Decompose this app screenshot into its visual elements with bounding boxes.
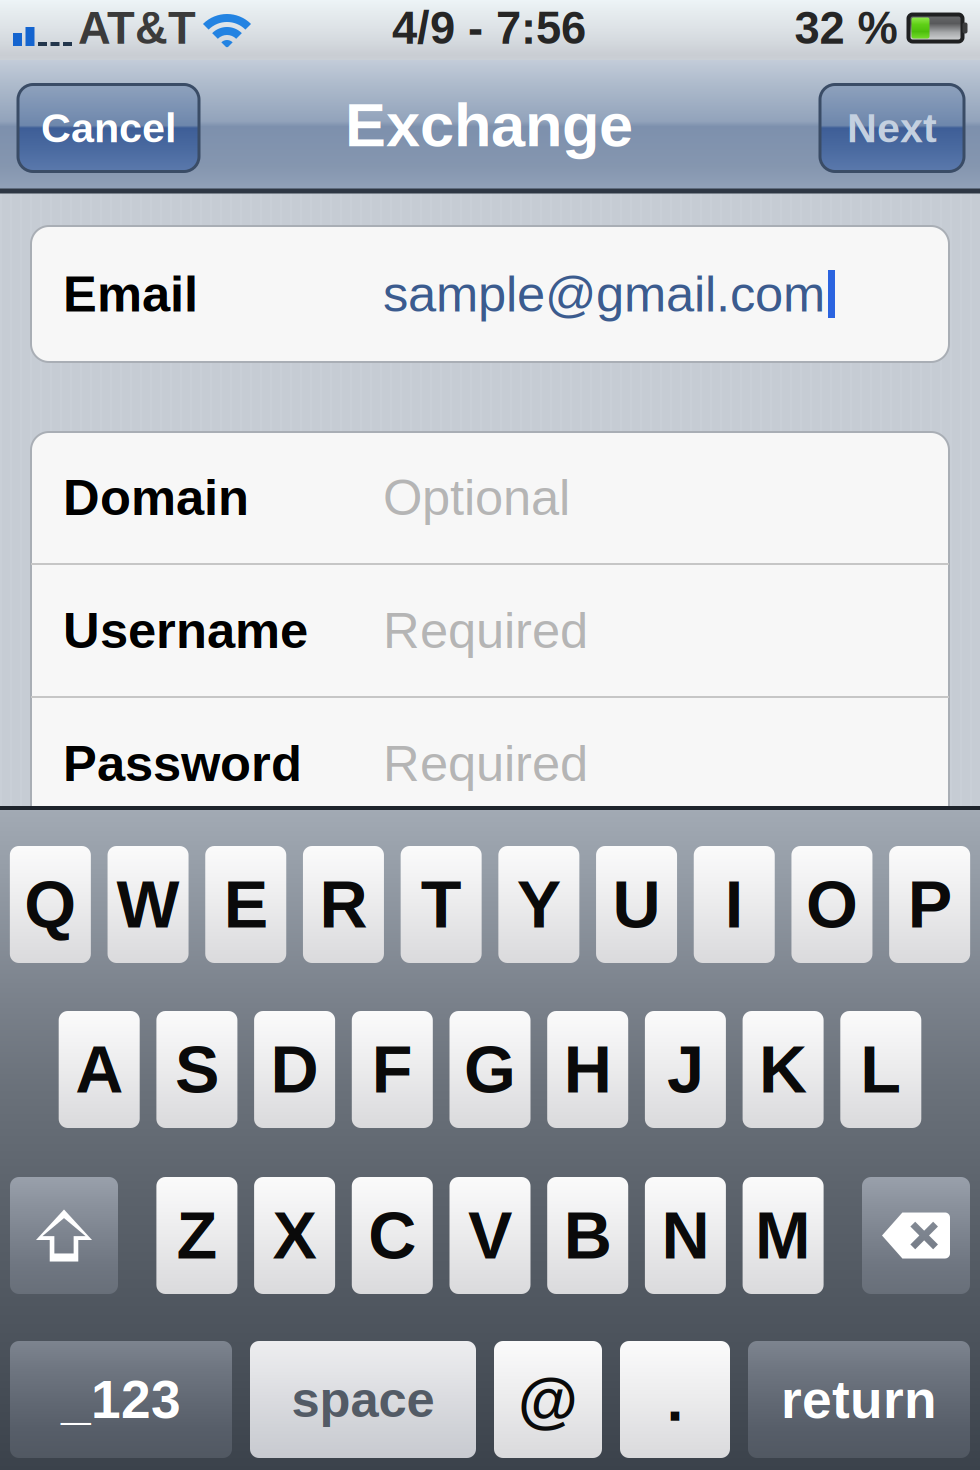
staticText: Password xyxy=(63,735,302,792)
button[interactable]: Domain xyxy=(31,432,949,563)
staticText: P xyxy=(908,867,952,942)
staticText: 4/9 - 7:56 xyxy=(392,3,586,53)
button[interactable]: Next xyxy=(820,84,964,171)
button[interactable]: Username xyxy=(31,565,949,696)
button[interactable]: C xyxy=(352,1177,433,1294)
button[interactable]: E xyxy=(205,846,286,963)
button[interactable]: Y xyxy=(498,846,579,963)
button[interactable]: @ xyxy=(494,1341,602,1458)
staticText: 32 % xyxy=(794,3,897,53)
button[interactable]: S xyxy=(156,1011,237,1128)
staticText: sample@gmail.com xyxy=(383,266,825,322)
button[interactable]: F xyxy=(352,1011,433,1128)
button[interactable]: O xyxy=(791,846,872,963)
staticText: H xyxy=(564,1032,612,1107)
staticText: AT&T xyxy=(78,3,196,53)
staticText: Optional xyxy=(383,469,570,526)
button[interactable]: . xyxy=(620,1341,730,1458)
staticText: Next xyxy=(847,105,937,151)
staticText: A xyxy=(75,1032,123,1107)
staticText: Domain xyxy=(63,469,249,526)
staticText: R xyxy=(319,867,367,942)
button[interactable]: return xyxy=(748,1341,970,1458)
button[interactable]: W xyxy=(108,846,189,963)
button[interactable]: J xyxy=(645,1011,726,1128)
button[interactable]: L xyxy=(840,1011,921,1128)
staticText: Required xyxy=(383,735,588,792)
button[interactable]: A xyxy=(59,1011,140,1128)
staticText: Z xyxy=(176,1198,217,1273)
staticText: S xyxy=(175,1032,219,1107)
button[interactable]: K xyxy=(743,1011,824,1128)
staticText: I xyxy=(725,867,744,942)
button[interactable]: U xyxy=(596,846,677,963)
button[interactable]: T xyxy=(401,846,482,963)
button[interactable]: Z xyxy=(156,1177,237,1294)
staticText: O xyxy=(806,867,858,942)
staticText: J xyxy=(667,1032,704,1107)
button[interactable]: Email xyxy=(31,226,949,362)
staticText: D xyxy=(271,1032,319,1107)
button[interactable]: G xyxy=(449,1011,530,1128)
button[interactable]: Cancel xyxy=(18,84,199,171)
staticText: space xyxy=(291,1371,434,1428)
staticText: C xyxy=(368,1198,416,1273)
staticText: return xyxy=(781,1370,937,1429)
staticText: Username xyxy=(63,602,308,659)
staticText: K xyxy=(759,1032,807,1107)
staticText: Y xyxy=(517,867,561,942)
staticText: N xyxy=(661,1198,709,1273)
staticText: L xyxy=(860,1032,901,1107)
staticText: G xyxy=(464,1032,516,1107)
staticText: M xyxy=(755,1198,811,1273)
staticText: Required xyxy=(383,602,588,659)
staticText: W xyxy=(117,867,180,942)
staticText: Email xyxy=(63,266,198,322)
button[interactable]: Delete xyxy=(862,1177,970,1294)
button[interactable]: Shift xyxy=(10,1177,118,1294)
button[interactable]: X xyxy=(254,1177,335,1294)
button[interactable]: I xyxy=(694,846,775,963)
button[interactable]: H xyxy=(547,1011,628,1128)
button[interactable]: D xyxy=(254,1011,335,1128)
staticText: B xyxy=(564,1198,612,1273)
button[interactable]: Q xyxy=(10,846,91,963)
staticText: Q xyxy=(24,867,76,942)
button[interactable]: M xyxy=(743,1177,824,1294)
staticText: @ xyxy=(518,1365,578,1434)
button[interactable]: R xyxy=(303,846,384,963)
staticText: X xyxy=(273,1198,317,1273)
button[interactable]: V xyxy=(449,1177,530,1294)
button[interactable]: B xyxy=(547,1177,628,1294)
staticText: . xyxy=(666,1365,683,1434)
button[interactable]: _123 xyxy=(10,1341,232,1458)
staticText: U xyxy=(613,867,661,942)
staticText: T xyxy=(421,867,462,942)
staticText: V xyxy=(468,1198,512,1273)
button[interactable]: space xyxy=(250,1341,476,1458)
staticText: _123 xyxy=(61,1370,181,1429)
button[interactable]: P xyxy=(889,846,970,963)
staticText: E xyxy=(224,867,268,942)
staticText: F xyxy=(372,1032,413,1107)
button[interactable]: Password xyxy=(31,698,949,829)
staticText: Exchange xyxy=(345,91,633,159)
staticText: Cancel xyxy=(41,105,176,151)
button[interactable]: N xyxy=(645,1177,726,1294)
